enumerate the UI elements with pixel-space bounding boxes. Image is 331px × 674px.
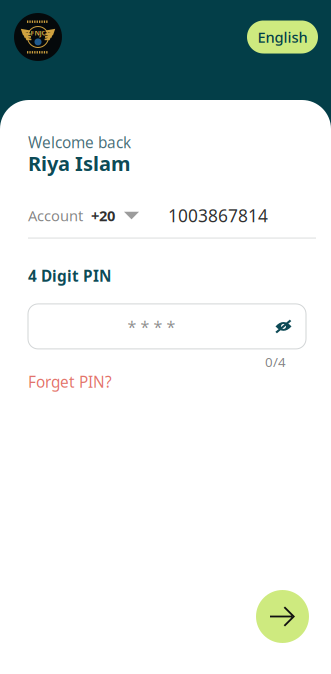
staticText: English — [257, 27, 307, 47]
staticText: +20 — [91, 206, 115, 225]
button[interactable]: Continue — [256, 590, 309, 643]
staticText: 4 Digit PIN — [28, 266, 111, 286]
staticText: Welcome back — [28, 132, 131, 152]
staticText: 0/4 — [265, 353, 286, 371]
staticText: Forget PIN? — [28, 372, 112, 392]
staticText: Riya Islam — [28, 150, 131, 177]
staticText: Account — [28, 206, 83, 225]
staticText: * * * * — [127, 316, 175, 337]
button[interactable]: English — [247, 20, 318, 53]
button[interactable]: Forget PIN? — [28, 372, 112, 392]
staticText: FNJC — [30, 29, 45, 37]
button[interactable]: Account — [28, 206, 316, 226]
staticText: 1003867814 — [168, 204, 268, 227]
